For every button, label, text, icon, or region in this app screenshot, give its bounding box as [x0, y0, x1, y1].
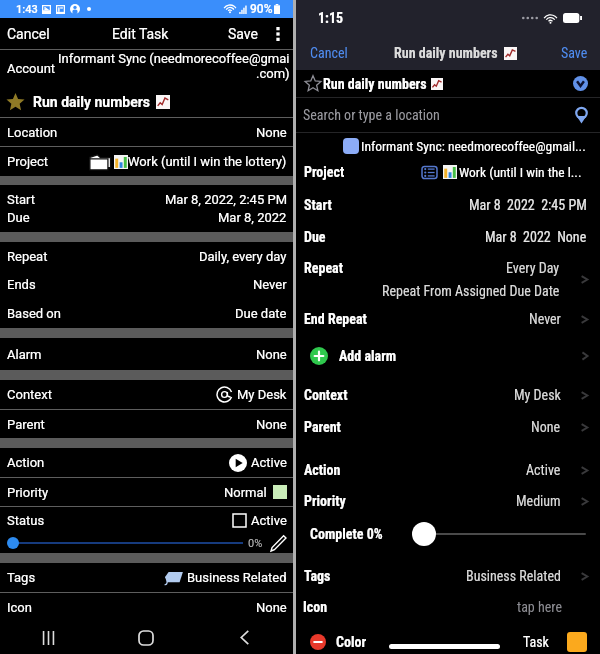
button[interactable]: Home [97, 621, 195, 654]
button[interactable]: Icon [296, 592, 600, 622]
button[interactable]: Context [0, 380, 293, 409]
staticText: My Desk [514, 387, 561, 403]
button[interactable]: Start [296, 189, 600, 221]
button[interactable]: Cancel [0, 18, 57, 49]
staticText: Mar 8 2022 2:45 PM [469, 197, 587, 213]
button[interactable]: Tags [296, 560, 600, 592]
button[interactable]: Due [296, 221, 600, 253]
button[interactable]: Priority [296, 485, 600, 517]
staticText: None [256, 347, 287, 362]
staticText: Edit Task [112, 26, 169, 42]
staticText: Run daily numbers [33, 94, 151, 110]
staticText: 0% [248, 537, 263, 550]
staticText: Task [523, 634, 549, 650]
staticText: Repeat [7, 249, 48, 264]
staticText: .com) [256, 66, 290, 81]
staticText: Due date [235, 306, 287, 321]
staticText: 1:43 [16, 3, 38, 16]
staticText: Color [336, 634, 367, 650]
staticText: Run daily numbers [323, 76, 427, 92]
staticText: Repeat From Assigned Due Date [382, 283, 560, 299]
staticText: 90% [250, 2, 273, 16]
button[interactable]: Priority [0, 478, 293, 506]
button[interactable]: Search or type a location [296, 98, 600, 132]
button[interactable]: Context [296, 379, 600, 411]
staticText: Priority [304, 493, 346, 509]
button[interactable]: Run daily numbers [296, 70, 600, 97]
button[interactable]: Icon [0, 593, 293, 621]
button[interactable]: Project [296, 158, 600, 186]
button[interactable]: Remove colour [310, 634, 326, 650]
staticText: Start [304, 197, 332, 213]
staticText: Business Related [187, 570, 287, 585]
staticText: Active [251, 513, 287, 528]
staticText: Repeat [304, 260, 343, 276]
button[interactable]: Repeat [0, 242, 293, 270]
button[interactable]: Ends [0, 270, 293, 298]
staticText: Mar 8 2022 None [485, 229, 587, 245]
button[interactable]: Account [0, 50, 293, 87]
button[interactable]: Edit progress [270, 535, 287, 552]
staticText: Save [561, 45, 588, 61]
staticText: Parent [7, 417, 45, 432]
button[interactable]: Parent [296, 411, 600, 443]
staticText: Cancel [7, 26, 50, 42]
button[interactable]: Parent [0, 410, 293, 438]
button[interactable]: Start [0, 185, 293, 232]
button[interactable]: Add alarm [296, 333, 600, 379]
staticText: Account [7, 61, 56, 76]
staticText: Action [7, 455, 45, 470]
staticText: Normal [224, 485, 267, 500]
staticText: Context [304, 387, 348, 403]
staticText: Business Related [466, 568, 561, 584]
staticText: Informant Sync (needmorecoffee@gmail [58, 51, 290, 66]
staticText: Project [304, 164, 345, 180]
staticText: Never [253, 277, 287, 292]
staticText: Cancel [310, 45, 348, 61]
staticText: Active [526, 462, 561, 478]
button[interactable]: Repeat [296, 253, 600, 305]
staticText: Due [304, 229, 326, 245]
staticText: Ends [7, 277, 36, 292]
button[interactable]: Complete 0% [296, 517, 600, 551]
staticText: Based on [7, 306, 61, 321]
button[interactable]: Recents [0, 621, 97, 654]
staticText: Action [304, 462, 341, 478]
staticText: Add alarm [339, 348, 397, 364]
button[interactable]: More options [262, 18, 293, 49]
button[interactable]: Save [224, 18, 262, 49]
button[interactable]: Cancel [304, 36, 354, 70]
staticText: Run daily numbers [394, 45, 498, 61]
staticText: My Desk [237, 387, 287, 402]
staticText: End Repeat [304, 311, 367, 327]
button[interactable]: Save [557, 36, 592, 70]
button[interactable]: Expand [573, 76, 588, 91]
staticText: 1:15 [318, 10, 344, 26]
button[interactable]: Action [296, 455, 600, 485]
button[interactable]: Alarm [0, 338, 293, 370]
button[interactable]: Status [0, 507, 293, 553]
staticText: Mar 8, 2022 [218, 210, 287, 225]
staticText: None [256, 600, 287, 615]
button[interactable]: Informant Sync: needmorecoffee@gmail... [296, 133, 600, 158]
staticText: Project [7, 154, 48, 169]
button[interactable]: Back [195, 621, 293, 654]
staticText: Save [228, 26, 258, 42]
button[interactable]: Run daily numbers [0, 87, 293, 117]
staticText: None [256, 417, 287, 432]
button[interactable]: Location [0, 118, 293, 146]
button[interactable]: Based on [0, 298, 293, 328]
button[interactable]: Tags [0, 563, 293, 592]
button[interactable]: Project [0, 147, 293, 176]
button[interactable]: End Repeat [296, 305, 600, 333]
staticText: Active [251, 455, 287, 470]
staticText: Tags [7, 570, 36, 585]
staticText: Informant Sync: needmorecoffee@gmail... [361, 138, 586, 154]
staticText: None [256, 125, 287, 140]
staticText: Work (until I win the lottery) [128, 154, 287, 169]
staticText: Start [7, 192, 36, 207]
button[interactable]: Action [0, 448, 293, 477]
staticText: Icon [7, 600, 32, 615]
staticText: Complete 0% [310, 526, 383, 542]
button[interactable]: Location [573, 107, 590, 124]
